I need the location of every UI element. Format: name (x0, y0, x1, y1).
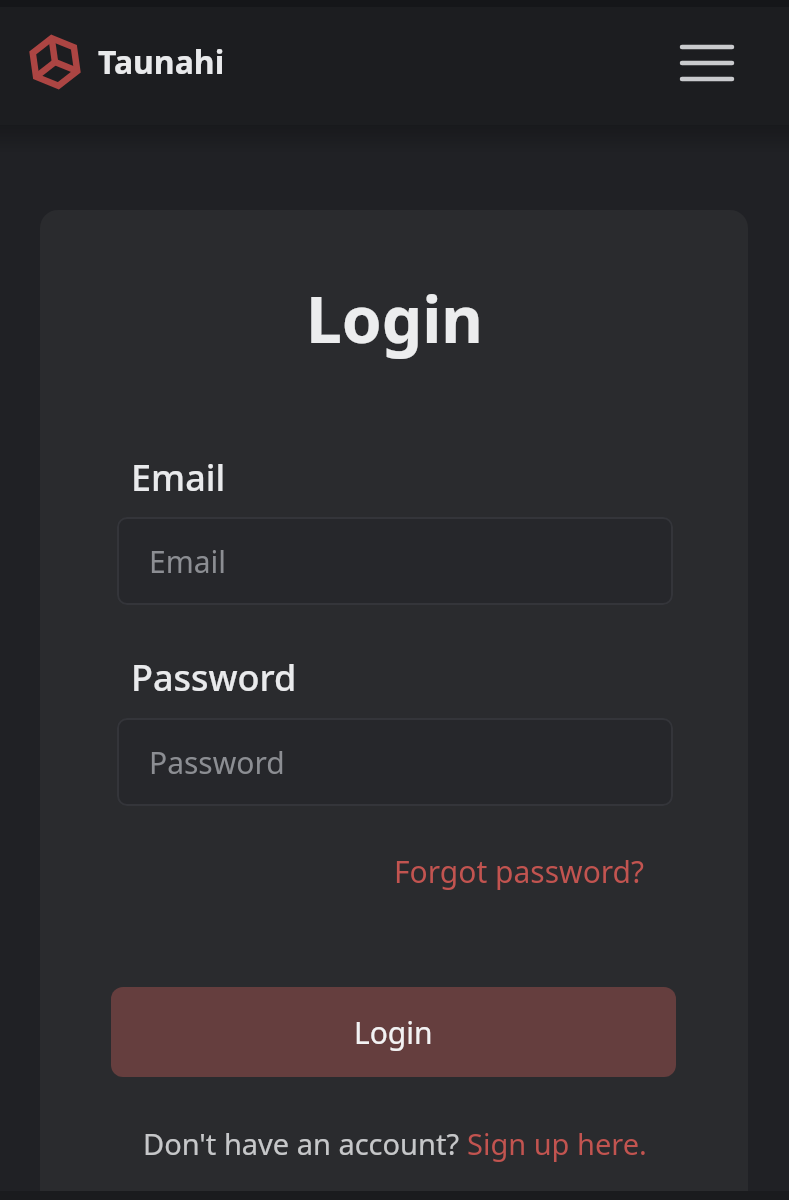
staticText: Forgot password? (394, 851, 645, 892)
staticText: Password (131, 653, 297, 702)
staticText: Sign up here. (467, 1124, 647, 1163)
button[interactable]: Sign up here. (467, 1124, 647, 1163)
button[interactable]: Password (117, 718, 673, 806)
button[interactable]: Email (117, 517, 673, 605)
button[interactable]: Taunahi (28, 24, 225, 100)
staticText: Email (131, 453, 226, 502)
button[interactable]: Forgot password? (394, 851, 645, 892)
button[interactable]: Login (111, 987, 676, 1077)
staticText: Login (306, 275, 483, 362)
staticText: Login (354, 1012, 433, 1053)
button[interactable] (667, 30, 747, 96)
staticText: Don't have an account? (143, 1124, 467, 1163)
staticText: Taunahi (98, 40, 225, 84)
staticText: Password (149, 742, 285, 783)
staticText: Email (149, 541, 227, 582)
